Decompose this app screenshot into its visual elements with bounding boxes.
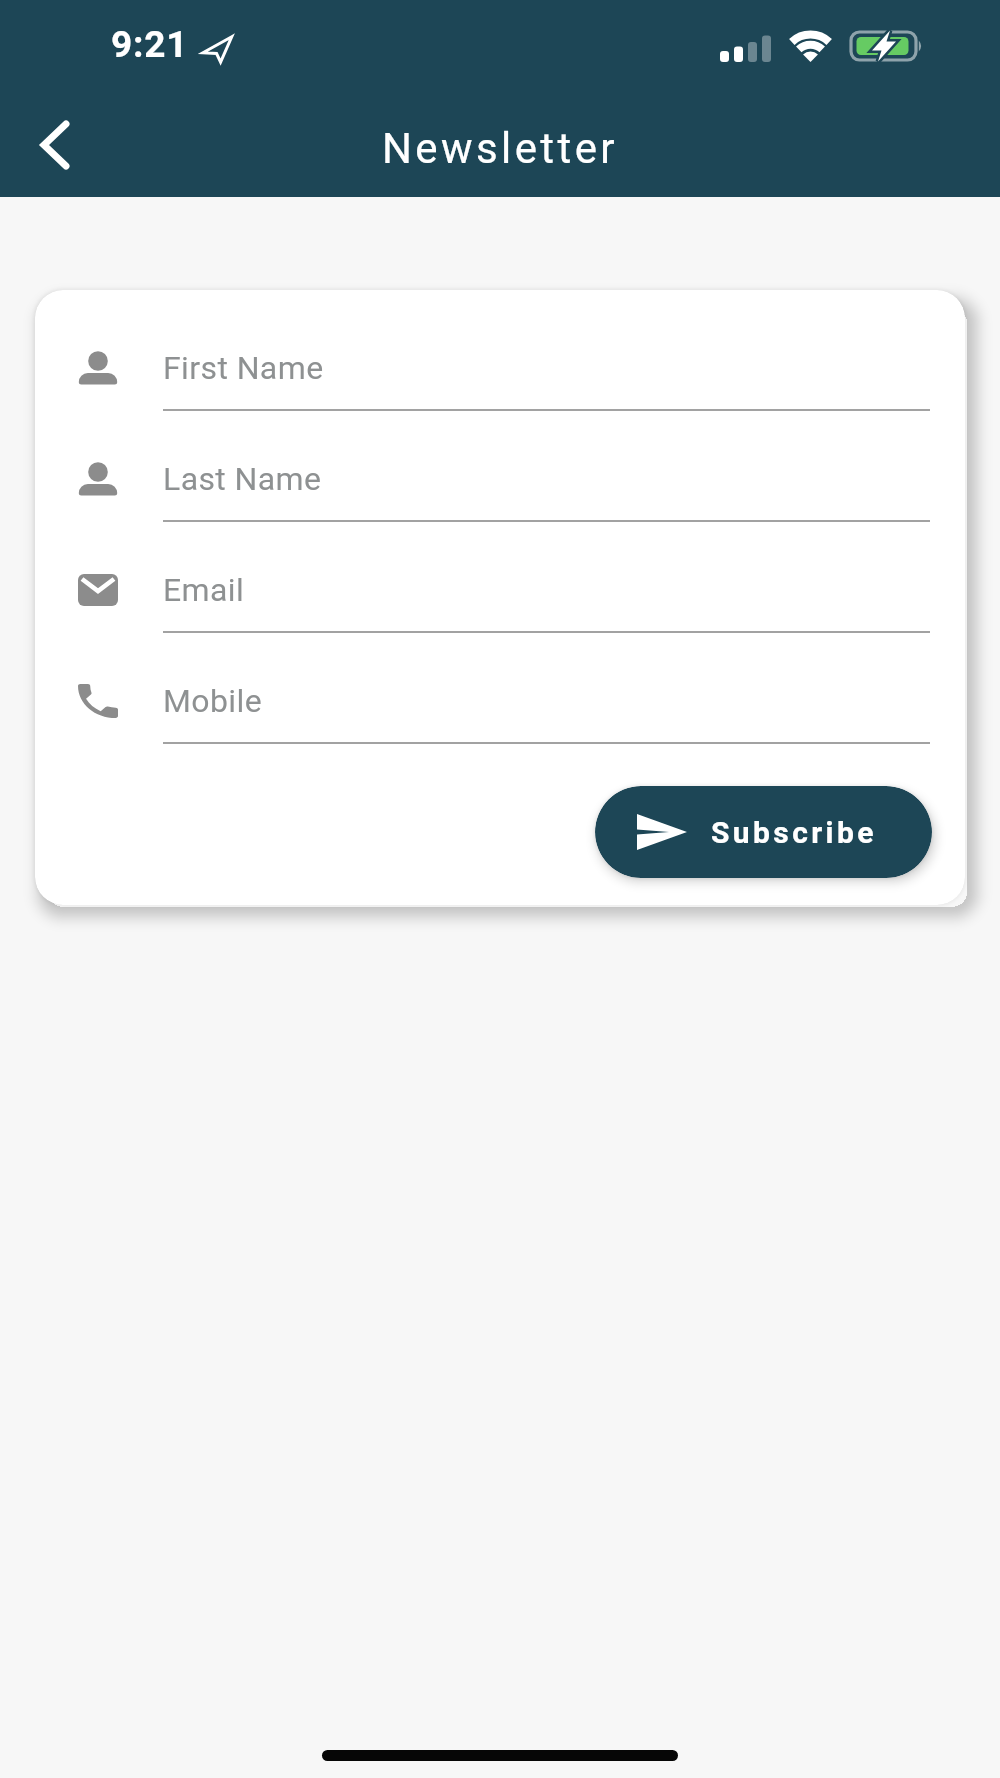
button[interactable]: Subscribe <box>595 786 932 878</box>
staticText: Newsletter <box>382 124 618 173</box>
staticText: Mobile <box>163 682 263 720</box>
button[interactable]: Last Name <box>163 453 933 505</box>
staticText: Email <box>163 571 245 609</box>
button[interactable]: Email <box>163 564 933 616</box>
button[interactable]: Mobile <box>163 675 933 727</box>
staticText: Last Name <box>163 460 322 498</box>
staticText: First Name <box>163 349 324 387</box>
button[interactable] <box>20 110 90 180</box>
staticText: Subscribe <box>711 815 877 850</box>
button[interactable]: First Name <box>163 342 933 394</box>
staticText: 9:21 <box>111 23 189 66</box>
